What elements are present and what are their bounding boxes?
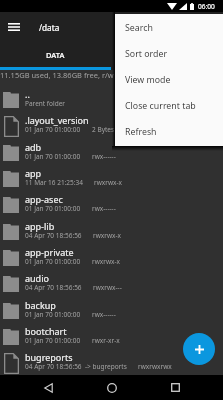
- staticText: /data: [39, 22, 60, 33]
- staticText: rwxrwx---: [93, 283, 122, 292]
- staticText: 11.15GB used, 13.86GB free, r/w: [0, 70, 114, 80]
- staticText: 06:00: [198, 2, 215, 11]
- staticText: bootchart: [25, 325, 67, 337]
- staticText: 01 Jan 70 01:00:00: [25, 152, 81, 161]
- button[interactable]: bootchart: [0, 324, 223, 350]
- staticText: DATA: [46, 50, 65, 60]
- button[interactable]: app-asec: [0, 192, 223, 218]
- staticText: 01 Jan 70 01:00:00: [25, 336, 81, 345]
- staticText: Parent folder: [25, 99, 66, 108]
- staticText: app-asec: [25, 193, 63, 205]
- button[interactable]: Search: [115, 15, 223, 41]
- button[interactable]: app-lib: [0, 219, 223, 245]
- staticText: 04 Apr 70 18:56:56: [25, 283, 82, 292]
- button[interactable]: Open navigation drawer: [0, 12, 28, 43]
- staticText: .layout_version: [25, 114, 89, 126]
- button[interactable]: audio: [0, 271, 223, 297]
- staticText: rwx------: [92, 204, 116, 213]
- button[interactable]: ..: [0, 87, 223, 113]
- button[interactable]: DATA: [0, 43, 111, 67]
- button[interactable]: Close current tab: [115, 93, 223, 119]
- staticText: 01 Jan 70 01:00:00: [25, 125, 81, 134]
- staticText: 2 Bytes rw: [92, 125, 127, 134]
- staticText: 04 Apr 70 18:56:56: [25, 231, 82, 240]
- button[interactable]: app: [0, 166, 223, 192]
- staticText: rwxr-xr-x: [92, 336, 120, 345]
- staticText: 04 Apr 70 18:56:56 -> bugreports: [25, 362, 127, 371]
- button[interactable]: adb: [0, 140, 223, 166]
- staticText: app-lib: [25, 220, 55, 232]
- button[interactable]: View mode: [115, 67, 223, 93]
- staticText: bugreports: [25, 351, 73, 363]
- staticText: rwx------: [92, 152, 116, 161]
- button[interactable]: Recent apps: [163, 375, 188, 400]
- staticText: View mode: [125, 74, 171, 86]
- staticText: backup: [25, 299, 56, 311]
- staticText: adb: [25, 141, 42, 153]
- staticText: rwxrwx-x: [92, 257, 120, 266]
- staticText: 11 Mar 16 21:25:34: [25, 178, 83, 187]
- staticText: audio: [25, 272, 49, 284]
- button[interactable]: Sort order: [115, 41, 223, 67]
- button[interactable]: .layout_version: [0, 113, 223, 139]
- button[interactable]: Back: [36, 375, 61, 400]
- staticText: rwxrwx-x: [94, 178, 122, 187]
- staticText: rwxrwx-x: [93, 231, 121, 240]
- staticText: Refresh: [125, 126, 157, 138]
- staticText: ..: [25, 88, 30, 100]
- staticText: rwxrwxrwx: [138, 362, 172, 371]
- staticText: Close current tab: [125, 100, 196, 112]
- button[interactable]: backup: [0, 298, 223, 324]
- button[interactable]: app-private: [0, 245, 223, 271]
- staticText: app-private: [25, 246, 74, 258]
- staticText: 01 Jan 70 01:00:00: [25, 204, 81, 213]
- button[interactable]: Home: [99, 375, 124, 400]
- staticText: app: [25, 167, 42, 179]
- staticText: rwx------: [92, 310, 116, 319]
- staticText: Search: [125, 22, 153, 34]
- button[interactable]: bugreports: [0, 350, 223, 376]
- staticText: Sort order: [125, 48, 168, 60]
- button[interactable]: Refresh: [115, 119, 223, 145]
- button[interactable]: Add: [183, 333, 215, 365]
- staticText: 01 Jan 70 01:00:00: [25, 310, 81, 319]
- staticText: 01 Jan 70 01:00:00: [25, 257, 81, 266]
